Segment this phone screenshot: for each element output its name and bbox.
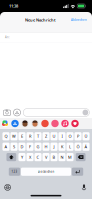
button[interactable]: B xyxy=(50,153,57,161)
staticText: F xyxy=(29,144,31,149)
staticText: P xyxy=(77,134,79,139)
staticText: Y xyxy=(21,154,23,160)
button[interactable]: Abbrechen xyxy=(68,15,92,24)
staticText: B xyxy=(52,154,55,160)
button[interactable]: I xyxy=(58,132,66,140)
staticText: T xyxy=(37,134,39,139)
staticText: H xyxy=(44,144,47,149)
staticText: Abbrechen xyxy=(71,18,87,22)
button[interactable]: Zeilenschaltung xyxy=(72,168,83,176)
button[interactable]: F xyxy=(26,143,34,151)
button[interactable]: W xyxy=(10,132,18,140)
staticText: 11:38 xyxy=(9,3,18,9)
button[interactable]: M xyxy=(66,153,73,161)
staticText: S xyxy=(13,144,15,149)
button[interactable]: T xyxy=(34,132,42,140)
button[interactable]: Apps xyxy=(13,109,21,116)
button[interactable]: P xyxy=(74,132,82,140)
button[interactable]: K xyxy=(58,143,66,151)
button[interactable]: H xyxy=(42,143,50,151)
staticText: 123 xyxy=(11,170,17,173)
staticText: Ü xyxy=(84,134,87,139)
staticText: Neue Nachricht xyxy=(25,17,56,23)
button[interactable]: G xyxy=(34,143,42,151)
staticText: N xyxy=(60,154,63,160)
button[interactable]: Umschalt xyxy=(6,153,16,161)
staticText: D xyxy=(20,144,23,149)
staticText: M xyxy=(68,154,72,160)
button[interactable]: N xyxy=(58,153,65,161)
button[interactable]: Z xyxy=(42,132,50,140)
staticText: U xyxy=(52,134,55,139)
staticText: R xyxy=(29,134,31,139)
staticText: K xyxy=(61,144,63,149)
staticText: E xyxy=(21,134,23,139)
staticText: An: xyxy=(5,35,10,39)
button[interactable]: Memoji-Sticker xyxy=(51,120,59,127)
button[interactable]: D xyxy=(18,143,26,151)
button[interactable]: Ü xyxy=(82,132,90,140)
button[interactable]: Ä xyxy=(82,143,90,151)
staticText: Leerzeichen xyxy=(37,170,54,173)
button[interactable]: Löschen xyxy=(76,153,86,161)
button[interactable]: iMessage schreiben xyxy=(23,108,89,116)
button[interactable]: Diktieren xyxy=(81,184,91,191)
button[interactable]: Q xyxy=(2,132,10,140)
button[interactable]: Musik xyxy=(61,120,69,127)
button[interactable]: Sticker xyxy=(41,120,49,127)
button[interactable]: V xyxy=(42,153,49,161)
button[interactable]: R xyxy=(26,132,34,140)
staticText: L xyxy=(69,144,71,149)
button[interactable]: Y xyxy=(18,153,25,161)
button[interactable]: Digital Touch xyxy=(71,120,79,127)
button[interactable]: S xyxy=(10,143,18,151)
staticText: G xyxy=(36,144,39,149)
button[interactable]: Tastatur wechseln xyxy=(1,184,11,191)
staticText: C xyxy=(36,154,39,160)
staticText: Q xyxy=(4,134,7,139)
button[interactable]: Ö xyxy=(74,143,82,151)
button[interactable]: Kamera xyxy=(3,109,11,116)
button[interactable]: 123 xyxy=(9,168,20,176)
staticText: O xyxy=(68,134,71,139)
button[interactable]: X xyxy=(26,153,33,161)
button[interactable]: U xyxy=(50,132,58,140)
button[interactable]: E xyxy=(18,132,26,140)
button[interactable]: Fotos xyxy=(1,120,9,127)
button[interactable]: A xyxy=(2,143,10,151)
staticText: Ö xyxy=(76,144,79,149)
button[interactable]: Memoji 1 xyxy=(21,120,29,127)
button[interactable]: Memoji 2 xyxy=(31,120,39,127)
staticText: W xyxy=(12,134,16,139)
button[interactable]: J xyxy=(50,143,58,151)
button[interactable]: App Store xyxy=(11,120,19,127)
button[interactable]: L xyxy=(66,143,74,151)
staticText: V xyxy=(45,154,47,160)
staticText: Ä xyxy=(84,144,87,149)
staticText: X xyxy=(29,154,31,160)
button[interactable]: O xyxy=(66,132,74,140)
staticText: A xyxy=(4,144,7,149)
staticText: Z xyxy=(45,134,47,139)
button[interactable]: C xyxy=(34,153,41,161)
button[interactable]: Leerzeichen xyxy=(21,168,71,176)
